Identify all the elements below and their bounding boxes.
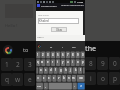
button[interactable]: ⏎ (77, 82, 85, 90)
button[interactable]: i (70, 58, 75, 66)
staticText: v (58, 76, 60, 80)
staticText: 9 (77, 53, 79, 57)
staticText: k (75, 68, 77, 72)
button[interactable]: x (46, 74, 51, 82)
staticText: the (72, 45, 76, 48)
button[interactable]: w (12, 73, 23, 86)
button[interactable]: 7 (65, 51, 70, 58)
staticText: u (67, 60, 69, 64)
button[interactable]: 1 (36, 51, 40, 58)
staticText: 5 (57, 53, 59, 57)
staticText: x (48, 76, 50, 80)
button[interactable]: 8 (85, 57, 96, 70)
button[interactable]: v (56, 74, 61, 82)
button[interactable]: 6 (60, 51, 65, 58)
button[interactable]: . (72, 82, 77, 90)
staticText: n (68, 76, 70, 80)
button[interactable]: e (24, 73, 35, 86)
staticText: 2 (42, 53, 44, 57)
button[interactable]: 2 (12, 58, 23, 71)
button[interactable]: h (63, 66, 68, 74)
button[interactable]: 3 (45, 51, 50, 58)
button[interactable]: k (73, 66, 78, 74)
staticText: 13:26 (77, 0, 84, 3)
button[interactable]: q (36, 58, 40, 66)
button[interactable]: u (65, 58, 70, 66)
staticText: h (65, 68, 67, 72)
staticText: Okay (56, 28, 63, 32)
staticText: ParallelCoder (41, 4, 57, 7)
button[interactable]: s (43, 66, 48, 74)
button[interactable]: 1 (1, 58, 12, 71)
staticText: ?123 (37, 85, 42, 88)
button[interactable]: 3 (24, 58, 35, 71)
staticText: q (37, 60, 39, 64)
button[interactable] (48, 82, 72, 90)
staticText: p (113, 74, 117, 83)
button[interactable]: f (53, 66, 58, 74)
button[interactable]: w (40, 58, 45, 66)
button[interactable]: m (71, 74, 76, 82)
button[interactable]: 0 (109, 57, 120, 70)
button[interactable]: 9 (97, 57, 108, 70)
staticText: m (72, 76, 75, 80)
staticText: a (40, 68, 42, 72)
staticText: t (57, 60, 58, 64)
button[interactable]: Google (3, 45, 13, 55)
button[interactable] (36, 66, 38, 74)
button[interactable]: o (75, 58, 80, 66)
button[interactable]: l (78, 66, 83, 74)
button[interactable]: o (97, 72, 108, 85)
button[interactable]: 8 (70, 51, 75, 58)
button[interactable]: r (50, 58, 55, 66)
staticText: 0 (82, 53, 84, 57)
button[interactable]: 4 (50, 51, 55, 58)
button[interactable]: p (109, 72, 120, 85)
staticText: s (45, 68, 47, 72)
button[interactable]: 2 (40, 51, 45, 58)
staticText: 4 (52, 53, 54, 57)
button[interactable]: p (80, 58, 85, 66)
button[interactable] (83, 66, 85, 74)
button[interactable]: t (55, 58, 60, 66)
button[interactable]: g (58, 66, 63, 74)
staticText: w (15, 75, 21, 84)
button[interactable]: i (85, 72, 96, 85)
staticText: z (43, 76, 45, 80)
staticText: j (70, 68, 71, 72)
staticText: 3 (28, 60, 32, 69)
button[interactable]: 0 (80, 51, 85, 58)
button[interactable]: e (45, 58, 50, 66)
staticText: 8 (72, 53, 74, 57)
staticText: 8 (89, 59, 93, 68)
button[interactable]: j (68, 66, 73, 74)
button[interactable]: z (41, 74, 46, 82)
staticText: ⇧ (37, 77, 40, 80)
button[interactable]: Google (37, 44, 41, 48)
staticText: r (52, 60, 54, 64)
staticText: 9 (101, 59, 105, 68)
button[interactable]: Okay (51, 27, 67, 32)
staticText: w (41, 60, 44, 64)
staticText: q (5, 75, 9, 84)
button[interactable]: a (38, 66, 43, 74)
button[interactable]: d (48, 66, 53, 74)
button[interactable]: ⌫ (76, 74, 85, 82)
button[interactable]: q (1, 73, 12, 86)
staticText: g (60, 68, 62, 72)
button[interactable]: b (61, 74, 66, 82)
button[interactable]: c (51, 74, 56, 82)
staticText: new name (38, 14, 49, 17)
staticText: b (63, 76, 65, 80)
staticText: I (62, 45, 63, 48)
button[interactable]: , (43, 82, 48, 90)
staticText: f (55, 68, 56, 72)
button[interactable]: n (66, 74, 71, 82)
button[interactable]: 5 (55, 51, 60, 58)
button[interactable]: ⇧ (36, 74, 41, 82)
staticText: e (47, 60, 49, 64)
button[interactable]: ?123 (36, 82, 43, 90)
button[interactable]: y (60, 58, 65, 66)
button[interactable]: 9 (75, 51, 80, 58)
